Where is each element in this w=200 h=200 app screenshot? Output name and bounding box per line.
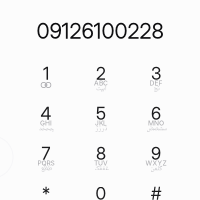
button[interactable]: Six, M N O bbox=[129, 106, 183, 146]
button[interactable]: Star bbox=[19, 186, 73, 200]
staticText: چحخد bbox=[38, 123, 53, 134]
staticText: ABC bbox=[94, 79, 108, 87]
staticText: طظع bbox=[40, 163, 51, 174]
staticText: 2 bbox=[96, 63, 106, 84]
staticText: JKL bbox=[95, 119, 107, 127]
staticText: PQRS bbox=[37, 159, 54, 167]
button[interactable]: Two, A B C bbox=[74, 66, 128, 106]
staticText: 4 bbox=[40, 103, 51, 124]
staticText: GHI bbox=[40, 119, 52, 127]
button[interactable]: Eight, T U V bbox=[74, 146, 128, 186]
button[interactable]: Nine, W X Y Z bbox=[129, 146, 183, 186]
button[interactable]: Four, G H I bbox=[19, 106, 73, 146]
staticText: ثج bbox=[153, 83, 159, 94]
staticText: 7 bbox=[41, 143, 50, 164]
staticText: + bbox=[99, 199, 103, 200]
staticText: TUV bbox=[94, 159, 108, 167]
staticText: گلمن bbox=[150, 163, 162, 174]
button[interactable]: Seven, P Q R S bbox=[19, 146, 73, 186]
staticText: سشصض bbox=[146, 123, 166, 134]
staticText: ذرزژ bbox=[95, 123, 107, 134]
staticText: 5 bbox=[96, 103, 106, 124]
button[interactable]: Zero, plus bbox=[74, 186, 128, 200]
button[interactable]: One, voicemail bbox=[19, 66, 73, 106]
staticText: 9 bbox=[151, 143, 161, 164]
staticText: 8 bbox=[96, 143, 106, 164]
button[interactable]: Five, J K L bbox=[74, 106, 128, 146]
staticText: DEF bbox=[149, 79, 162, 87]
staticText: غفقک bbox=[94, 163, 108, 174]
staticText: 09126100228 bbox=[36, 18, 163, 44]
staticText: 1 bbox=[43, 63, 49, 84]
staticText: 6 bbox=[151, 103, 161, 124]
staticText: # bbox=[151, 183, 161, 200]
staticText: WXYZ bbox=[145, 159, 166, 167]
staticText: * bbox=[42, 183, 50, 200]
button[interactable]: Pound bbox=[129, 186, 183, 200]
button[interactable]: 09126100228 bbox=[0, 20, 200, 42]
button[interactable]: Three, D E F bbox=[129, 66, 183, 106]
staticText: MNO bbox=[148, 119, 164, 127]
staticText: 3 bbox=[151, 63, 161, 84]
staticText: ابپت bbox=[95, 83, 106, 94]
staticText: 0 bbox=[95, 183, 106, 200]
